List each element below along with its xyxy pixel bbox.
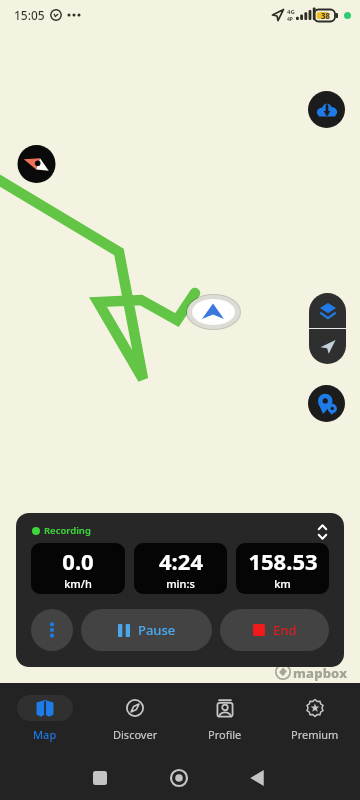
staticText: Discover xyxy=(113,727,158,742)
staticText: Recording xyxy=(44,524,91,537)
button[interactable]: More options xyxy=(31,609,73,651)
button[interactable]: Recent apps xyxy=(79,762,121,793)
staticText: Profile xyxy=(208,727,242,742)
button[interactable]: Discover xyxy=(90,683,180,755)
button[interactable]: Map layers xyxy=(309,293,346,328)
staticText: 4P xyxy=(287,16,293,23)
staticText: 0.0 xyxy=(62,546,94,576)
button[interactable]: End xyxy=(220,609,329,651)
staticText: km xyxy=(274,576,291,591)
staticText: End xyxy=(273,621,297,639)
button[interactable]: Recenter xyxy=(309,329,346,364)
staticText: Map xyxy=(33,727,57,742)
button[interactable]: Expand panel xyxy=(306,516,338,548)
button[interactable]: Add waypoint xyxy=(308,385,345,422)
button[interactable]: Pause xyxy=(81,609,212,651)
staticText: 4:24 xyxy=(159,546,203,576)
staticText: min:s xyxy=(166,576,195,591)
staticText: mapbox xyxy=(293,664,348,682)
button[interactable]: Home xyxy=(158,762,200,793)
staticText: 158.53 xyxy=(248,546,318,576)
button[interactable]: Download offline map xyxy=(308,91,345,128)
button[interactable]: Premium xyxy=(270,683,360,755)
staticText: Pause xyxy=(138,621,176,639)
button[interactable]: Profile xyxy=(180,683,270,755)
staticText: km/h xyxy=(64,576,92,591)
staticText: 38 xyxy=(321,10,331,21)
staticText: 15:05 xyxy=(14,7,45,23)
staticText: Premium xyxy=(291,727,339,742)
button[interactable]: Back xyxy=(236,762,278,793)
button[interactable]: Map xyxy=(0,683,90,755)
staticText: 4G xyxy=(287,8,295,16)
